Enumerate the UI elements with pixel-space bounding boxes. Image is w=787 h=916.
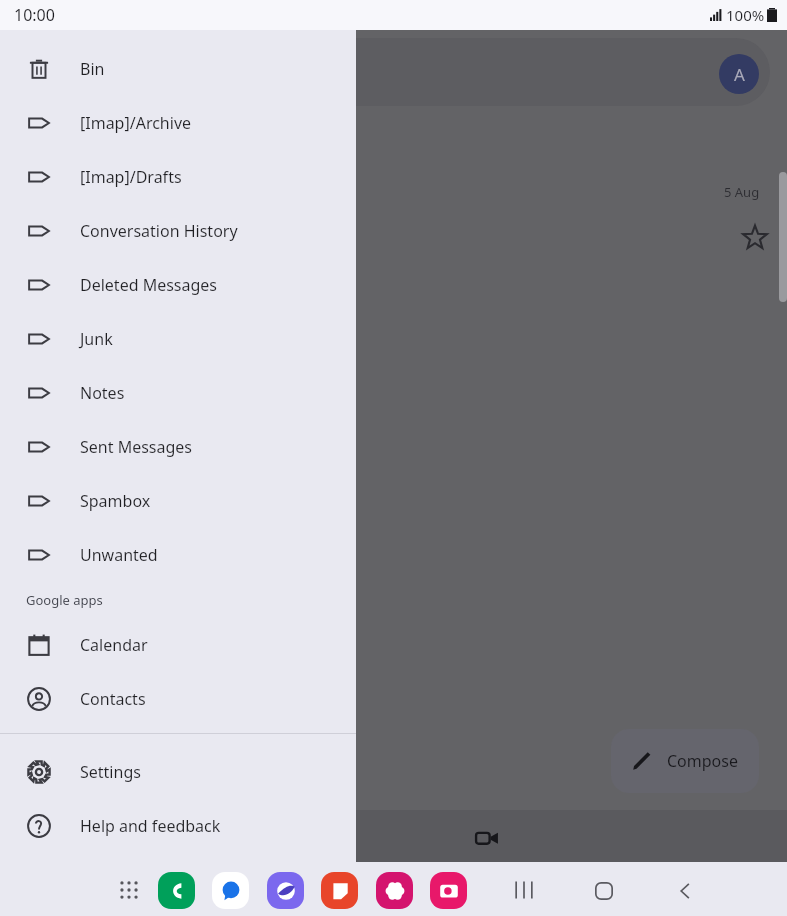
button[interactable]: Help and feedback <box>0 799 356 853</box>
staticText: [Imap]/Archive <box>80 112 192 134</box>
button[interactable]: Calendar <box>0 618 356 672</box>
staticText: Spambox <box>80 490 151 512</box>
staticText: Calendar <box>80 634 148 656</box>
button[interactable]: Back <box>674 879 698 903</box>
staticText: Contacts <box>80 688 146 710</box>
button[interactable]: Contacts <box>0 672 356 726</box>
button[interactable]: Conversation History <box>0 204 356 258</box>
staticText: Settings <box>80 761 141 783</box>
button[interactable]: Video call <box>474 825 500 851</box>
staticText: [Imap]/Drafts <box>80 166 182 188</box>
button[interactable]: Deleted Messages <box>0 258 356 312</box>
staticText: Notes <box>80 382 125 404</box>
staticText: Unwanted <box>80 544 158 566</box>
staticText: Help and feedback <box>80 815 221 837</box>
staticText: Deleted Messages <box>80 274 218 296</box>
button[interactable]: NOTES <box>321 872 358 909</box>
button[interactable]: [Imap]/Archive <box>0 96 356 150</box>
button[interactable]: Settings <box>0 745 356 799</box>
staticText: Compose <box>667 750 738 772</box>
staticText: Sent Messages <box>80 436 193 458</box>
button[interactable]: Compose <box>611 729 759 793</box>
button[interactable]: Unwanted <box>0 528 356 582</box>
staticText: Conversation History <box>80 220 238 242</box>
staticText: 100% <box>726 5 765 25</box>
button[interactable]: Notes <box>0 366 356 420</box>
button[interactable]: PHONE <box>158 872 195 909</box>
button[interactable]: All apps <box>118 879 140 901</box>
button[interactable]: Star <box>742 225 768 251</box>
button[interactable] <box>300 38 770 106</box>
button[interactable]: [Imap]/Drafts <box>0 150 356 204</box>
button[interactable]: Junk <box>0 312 356 366</box>
staticText: 10:00 <box>14 4 55 26</box>
staticText: A <box>734 63 745 86</box>
button[interactable]: GALLERY <box>376 872 413 909</box>
staticText: 5 Aug <box>724 183 760 201</box>
button[interactable]: Home <box>592 879 616 903</box>
staticText: Bin <box>80 58 105 80</box>
button[interactable]: BROWSER <box>267 872 304 909</box>
button[interactable]: MESSAGE <box>212 872 249 909</box>
button[interactable]: Account <box>719 54 759 94</box>
staticText: Google apps <box>26 591 103 609</box>
button[interactable]: Sent Messages <box>0 420 356 474</box>
button[interactable]: CAMERA <box>430 872 467 909</box>
button[interactable]: Bin <box>0 42 356 96</box>
staticText: Junk <box>80 328 113 350</box>
button[interactable]: Recents <box>510 880 538 900</box>
button[interactable]: Spambox <box>0 474 356 528</box>
